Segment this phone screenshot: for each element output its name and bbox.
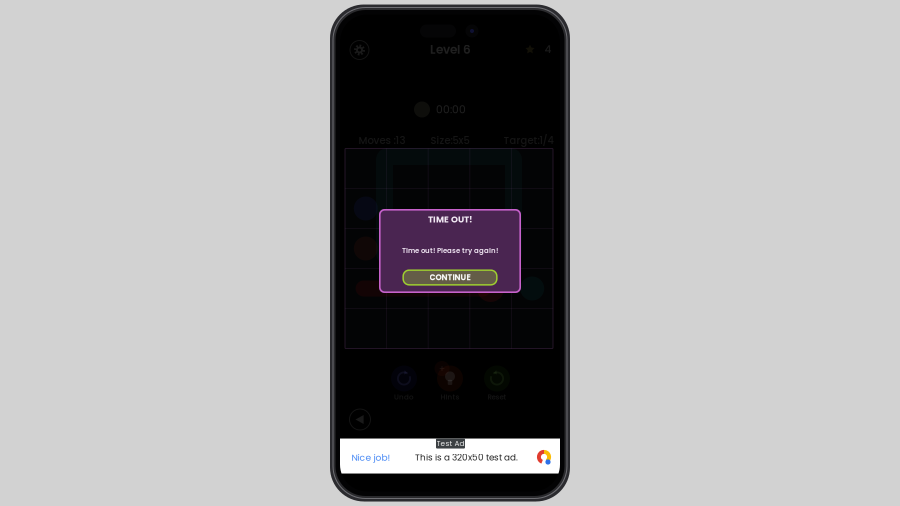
staticText: Test Ad bbox=[436, 438, 464, 449]
staticText: Time out! Please try again! bbox=[402, 246, 498, 255]
staticText: Moves :13 bbox=[358, 133, 405, 148]
staticText: This is a 320x50 test ad. bbox=[415, 451, 518, 464]
staticText: CONTINUE bbox=[429, 272, 470, 283]
button[interactable]: Settings bbox=[348, 39, 370, 61]
button[interactable]: Reset bbox=[476, 364, 518, 404]
staticText: Nice job! bbox=[351, 451, 390, 464]
staticText: 00:00 bbox=[436, 102, 466, 117]
staticText: 4 bbox=[544, 42, 551, 57]
staticText: Hints bbox=[440, 392, 459, 402]
staticText: Level 6 bbox=[430, 41, 471, 58]
staticText: TIME OUT! bbox=[428, 213, 472, 226]
button[interactable]: Hints bbox=[429, 364, 471, 404]
staticText: Reset bbox=[487, 392, 506, 402]
button[interactable]: Undo bbox=[383, 364, 425, 404]
staticText: Target:1/4 bbox=[503, 134, 553, 147]
button[interactable]: Back bbox=[348, 407, 372, 431]
staticText: Size:5x5 bbox=[430, 134, 469, 147]
staticText: Undo bbox=[394, 392, 414, 402]
button[interactable]: CONTINUE bbox=[402, 269, 497, 285]
